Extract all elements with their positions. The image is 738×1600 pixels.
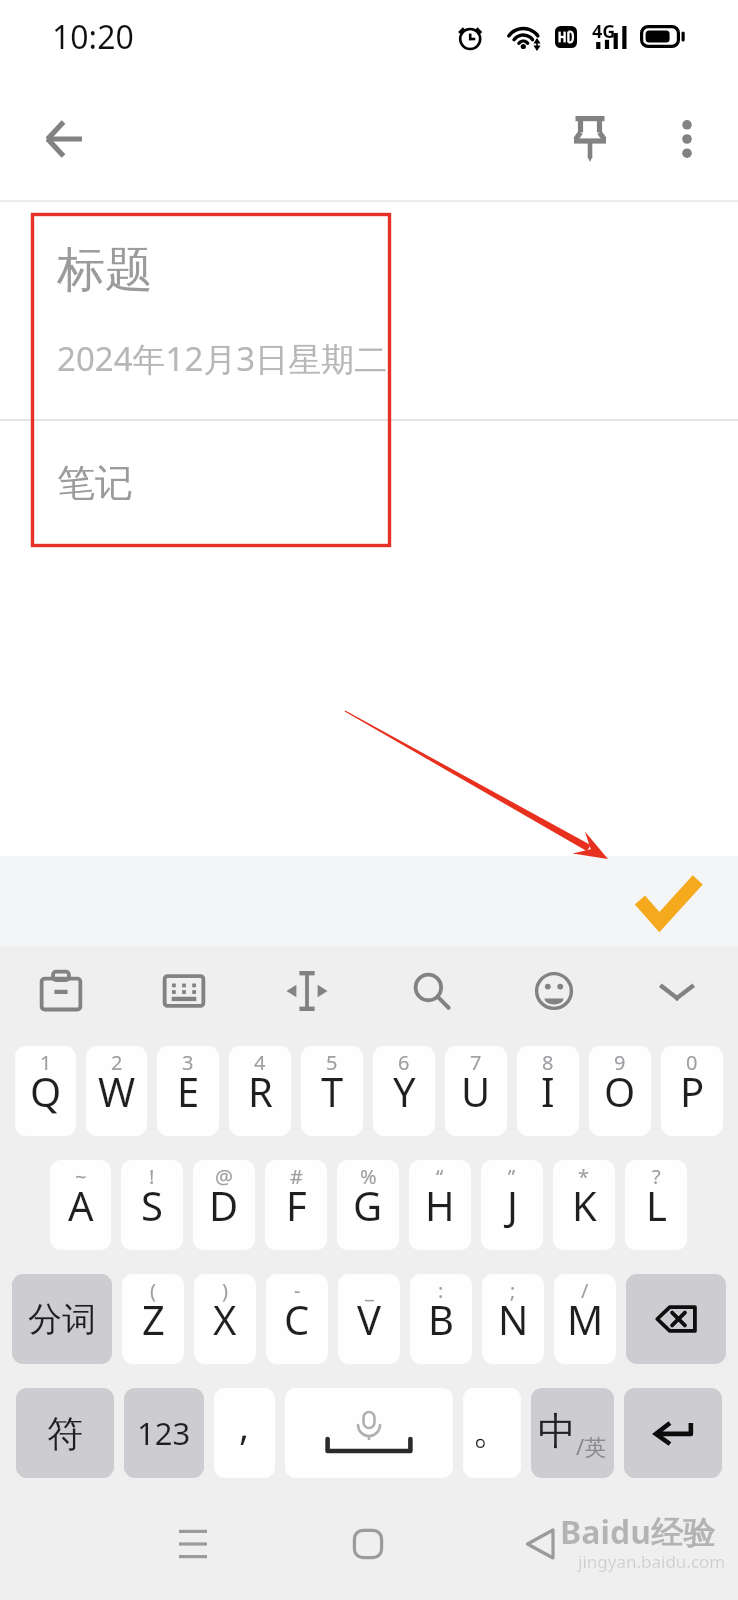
staticText: C xyxy=(284,1292,310,1346)
button[interactable]: Emoji xyxy=(515,948,593,1034)
staticText: * xyxy=(578,1163,590,1190)
staticText: 6 xyxy=(398,1049,410,1076)
button[interactable]: 7 xyxy=(445,1046,507,1136)
staticText: 分词 xyxy=(28,1298,96,1341)
staticText: D xyxy=(209,1178,239,1232)
staticText: M xyxy=(567,1292,604,1346)
staticText: 2024年12月3日星期二 xyxy=(57,336,388,381)
staticText: P xyxy=(680,1064,705,1118)
button[interactable]: Home xyxy=(313,1494,423,1594)
staticText: E xyxy=(177,1064,200,1118)
staticText: U xyxy=(461,1064,491,1118)
staticText: N xyxy=(498,1292,529,1346)
button[interactable]: Move cursor xyxy=(268,948,346,1034)
button[interactable]: Language xyxy=(531,1388,614,1478)
button[interactable]: Symbols xyxy=(16,1388,114,1478)
button[interactable]: ~ xyxy=(50,1160,111,1250)
button[interactable]: 3 xyxy=(157,1046,219,1136)
staticText: ? xyxy=(652,1163,661,1190)
staticText: O xyxy=(604,1064,636,1118)
staticText: _ xyxy=(365,1277,374,1304)
button[interactable]: ; xyxy=(482,1274,544,1364)
button[interactable]: 9 xyxy=(589,1046,651,1136)
staticText: jingyan.baidu.com xyxy=(578,1550,726,1573)
button[interactable]: Clipboard xyxy=(22,948,100,1034)
staticText: A xyxy=(68,1178,94,1232)
button[interactable]: / xyxy=(554,1274,616,1364)
button[interactable]: ( xyxy=(122,1274,184,1364)
staticText: W xyxy=(98,1064,136,1118)
staticText: K xyxy=(572,1178,597,1232)
button[interactable]: - xyxy=(266,1274,328,1364)
button[interactable]: Enter xyxy=(624,1388,722,1478)
staticText: I xyxy=(541,1064,555,1118)
button[interactable]: Backspace xyxy=(626,1274,726,1364)
staticText: J xyxy=(507,1178,518,1232)
button[interactable]: ” xyxy=(481,1160,543,1250)
staticText: : xyxy=(438,1277,444,1304)
staticText: ; xyxy=(510,1277,516,1304)
button[interactable]: # xyxy=(265,1160,327,1250)
staticText: ! xyxy=(149,1163,155,1190)
staticText: R xyxy=(248,1064,273,1118)
staticText: % xyxy=(360,1163,377,1190)
button[interactable]: % xyxy=(337,1160,399,1250)
staticText: 9 xyxy=(614,1049,626,1076)
staticText: “ xyxy=(436,1163,444,1190)
staticText: X xyxy=(213,1292,237,1346)
staticText: T xyxy=(321,1064,344,1118)
staticText: 。 xyxy=(472,1404,512,1454)
button[interactable]: Keyboard layout xyxy=(145,948,223,1034)
staticText: 3 xyxy=(182,1049,194,1076)
staticText: ) xyxy=(222,1277,228,1304)
button[interactable]: ? xyxy=(625,1160,687,1250)
button[interactable]: More options xyxy=(645,97,729,181)
staticText: , xyxy=(239,1399,250,1451)
button[interactable]: 0 xyxy=(661,1046,723,1136)
button[interactable]: * xyxy=(553,1160,615,1250)
staticText: 4G xyxy=(592,19,616,43)
button[interactable]: Hide keyboard xyxy=(638,948,716,1034)
button[interactable]: ! xyxy=(121,1160,183,1250)
button[interactable]: ) xyxy=(194,1274,256,1364)
staticText: / xyxy=(581,1277,589,1304)
button[interactable]: Numbers xyxy=(124,1388,204,1478)
button[interactable]: : xyxy=(410,1274,472,1364)
button[interactable]: Word split xyxy=(12,1274,112,1364)
button[interactable]: Back xyxy=(22,97,106,181)
staticText: 10:20 xyxy=(52,15,134,59)
button[interactable]: Space xyxy=(285,1388,453,1478)
staticText: 5 xyxy=(326,1049,338,1076)
button[interactable]: Period xyxy=(463,1388,521,1478)
staticText: 2 xyxy=(111,1049,123,1076)
button[interactable]: _ xyxy=(338,1274,400,1364)
button[interactable]: 4 xyxy=(229,1046,291,1136)
button[interactable]: @ xyxy=(193,1160,255,1250)
staticText: Baidu经验 xyxy=(560,1510,716,1554)
staticText: 标题 xyxy=(57,240,153,300)
button[interactable]: Confirm xyxy=(618,863,718,939)
button[interactable]: 8 xyxy=(517,1046,579,1136)
staticText: 中 xyxy=(538,1407,576,1455)
button[interactable]: Search xyxy=(392,948,470,1034)
staticText: ~ xyxy=(75,1163,87,1190)
staticText: ” xyxy=(508,1163,516,1190)
staticText: /英 xyxy=(576,1431,607,1461)
button[interactable]: Recent apps xyxy=(138,1494,248,1594)
button[interactable]: “ xyxy=(409,1160,471,1250)
staticText: 1 xyxy=(40,1049,52,1076)
staticText: 7 xyxy=(470,1049,482,1076)
button[interactable]: 5 xyxy=(301,1046,363,1136)
staticText: 8 xyxy=(542,1049,554,1076)
staticText: - xyxy=(294,1277,301,1304)
button[interactable]: Back xyxy=(486,1494,596,1594)
button[interactable]: Comma xyxy=(214,1388,275,1478)
staticText: @ xyxy=(215,1163,233,1190)
button[interactable]: Pin xyxy=(548,97,632,181)
staticText: B xyxy=(428,1292,454,1346)
button[interactable]: 1 xyxy=(15,1046,76,1136)
staticText: 0 xyxy=(686,1049,698,1076)
button[interactable]: 6 xyxy=(373,1046,435,1136)
staticText: L xyxy=(646,1178,667,1232)
button[interactable]: 2 xyxy=(86,1046,147,1136)
